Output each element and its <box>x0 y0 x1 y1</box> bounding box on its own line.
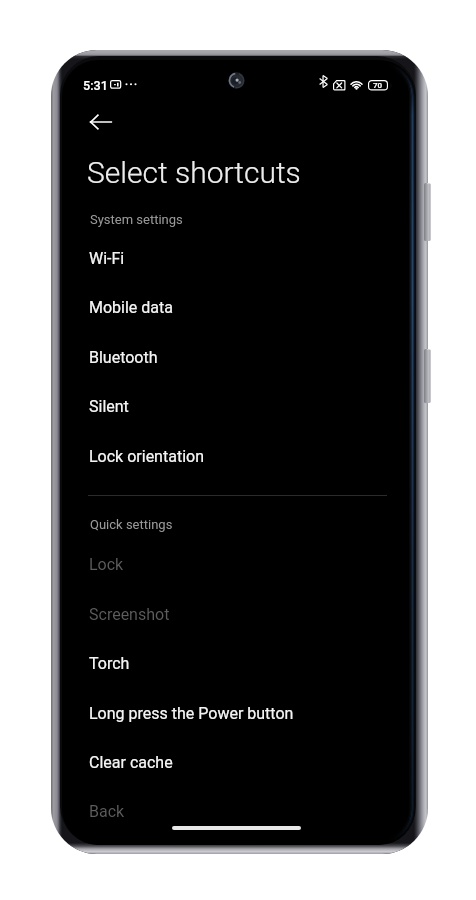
staticText: Silent <box>89 397 129 416</box>
button[interactable]: Mobile data <box>62 284 415 334</box>
staticText: Bluetooth <box>89 348 158 367</box>
staticText: Long press the Power button <box>89 704 294 723</box>
staticText: Wi-Fi <box>89 249 125 268</box>
button[interactable]: Wi-Fi <box>62 235 415 285</box>
staticText: System settings <box>90 212 183 227</box>
button[interactable]: Bluetooth <box>62 334 415 384</box>
staticText: Back <box>89 802 125 821</box>
button[interactable]: Back <box>79 100 123 144</box>
button[interactable]: Screenshot <box>62 591 415 641</box>
staticText: Torch <box>89 654 130 673</box>
staticText: Select shortcuts <box>87 155 301 190</box>
button[interactable]: Long press the Power button <box>62 690 415 740</box>
staticText: Lock <box>89 555 124 574</box>
staticText: Screenshot <box>89 605 170 624</box>
staticText: 5:31 <box>83 78 108 93</box>
button[interactable]: Torch <box>62 640 415 690</box>
button[interactable]: Silent <box>62 383 415 433</box>
staticText: 70 <box>373 81 383 90</box>
button[interactable]: Lock orientation <box>62 433 415 483</box>
button[interactable]: Lock <box>62 541 415 591</box>
staticText: Clear cache <box>89 753 173 772</box>
button[interactable]: Clear cache <box>62 739 415 789</box>
button[interactable]: Back <box>62 788 415 838</box>
staticText: Mobile data <box>89 298 173 317</box>
staticText: Quick settings <box>90 517 173 532</box>
staticText: Lock orientation <box>89 447 204 466</box>
